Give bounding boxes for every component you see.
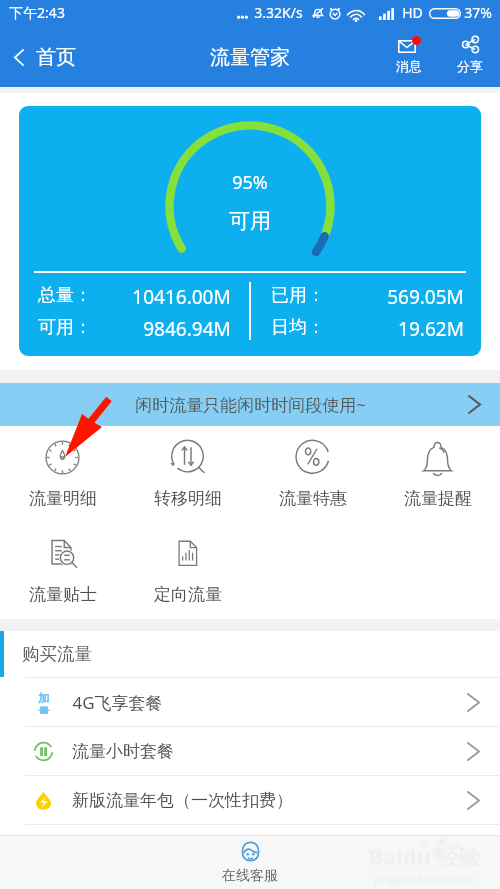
button[interactable]: 返回 首页 xyxy=(0,45,86,70)
staticText: Baidu 经验 xyxy=(368,841,481,871)
staticText: 9846.94M xyxy=(143,316,231,338)
staticText: 4G飞享套餐 xyxy=(72,691,163,714)
button[interactable]: 新版流量年包（一次性扣费） xyxy=(0,776,500,824)
staticText: 日均： xyxy=(271,316,325,338)
staticText: 消息 xyxy=(396,58,422,74)
staticText: 量 xyxy=(38,705,50,714)
staticText: 下午2:43 xyxy=(9,3,65,22)
staticText: 流量特惠 xyxy=(279,488,347,509)
button[interactable]: 流量小时套餐 xyxy=(0,727,500,775)
button[interactable]: 在线客服 xyxy=(212,838,288,887)
staticText: 19.62M xyxy=(398,316,464,338)
staticText: 转移明细 xyxy=(154,488,222,509)
button[interactable]: 消息 xyxy=(381,27,436,87)
staticText: 流量管家 xyxy=(210,45,290,70)
button[interactable]: 转移明细 xyxy=(125,440,250,509)
button[interactable]: 闲时流量只能闲时时间段使用~ xyxy=(0,383,500,426)
staticText: 购买流量 xyxy=(22,643,92,665)
staticText: 已用： xyxy=(271,284,325,306)
staticText: 总量： xyxy=(38,284,92,306)
staticText: 3.32K/s xyxy=(254,3,303,22)
staticText: 分享 xyxy=(457,58,483,74)
button[interactable]: 流量贴士 xyxy=(0,536,125,605)
button[interactable]: 流量提醒 xyxy=(375,440,500,509)
staticText: 可用： xyxy=(38,316,92,338)
staticText: 首页 xyxy=(36,45,76,70)
button[interactable]: 定向流量 xyxy=(125,536,250,605)
button[interactable]: 流量明细 xyxy=(0,440,125,509)
staticText: 可用 xyxy=(229,208,271,234)
staticText: 加 xyxy=(38,691,50,705)
button[interactable]: 分享 xyxy=(442,27,497,87)
staticText: 闲时流量只能闲时时间段使用~ xyxy=(135,393,366,416)
staticText: 37% xyxy=(464,3,492,22)
staticText: 流量小时套餐 xyxy=(72,741,174,762)
staticText: HD xyxy=(402,3,423,22)
staticText: 流量提醒 xyxy=(404,488,472,509)
staticText: 在线客服 xyxy=(222,867,278,885)
staticText: 流量明细 xyxy=(29,488,97,509)
button[interactable] xyxy=(0,825,500,873)
button[interactable]: 流量特惠 xyxy=(250,440,375,509)
staticText: 流量贴士 xyxy=(29,584,97,605)
staticText: 10416.00M xyxy=(132,284,231,306)
staticText: 95% xyxy=(232,170,268,195)
button[interactable]: 加 xyxy=(0,678,500,726)
staticText: 新版流量年包（一次性扣费） xyxy=(72,790,293,811)
staticText: 569.05M xyxy=(387,284,464,306)
staticText: 定向流量 xyxy=(154,584,222,605)
